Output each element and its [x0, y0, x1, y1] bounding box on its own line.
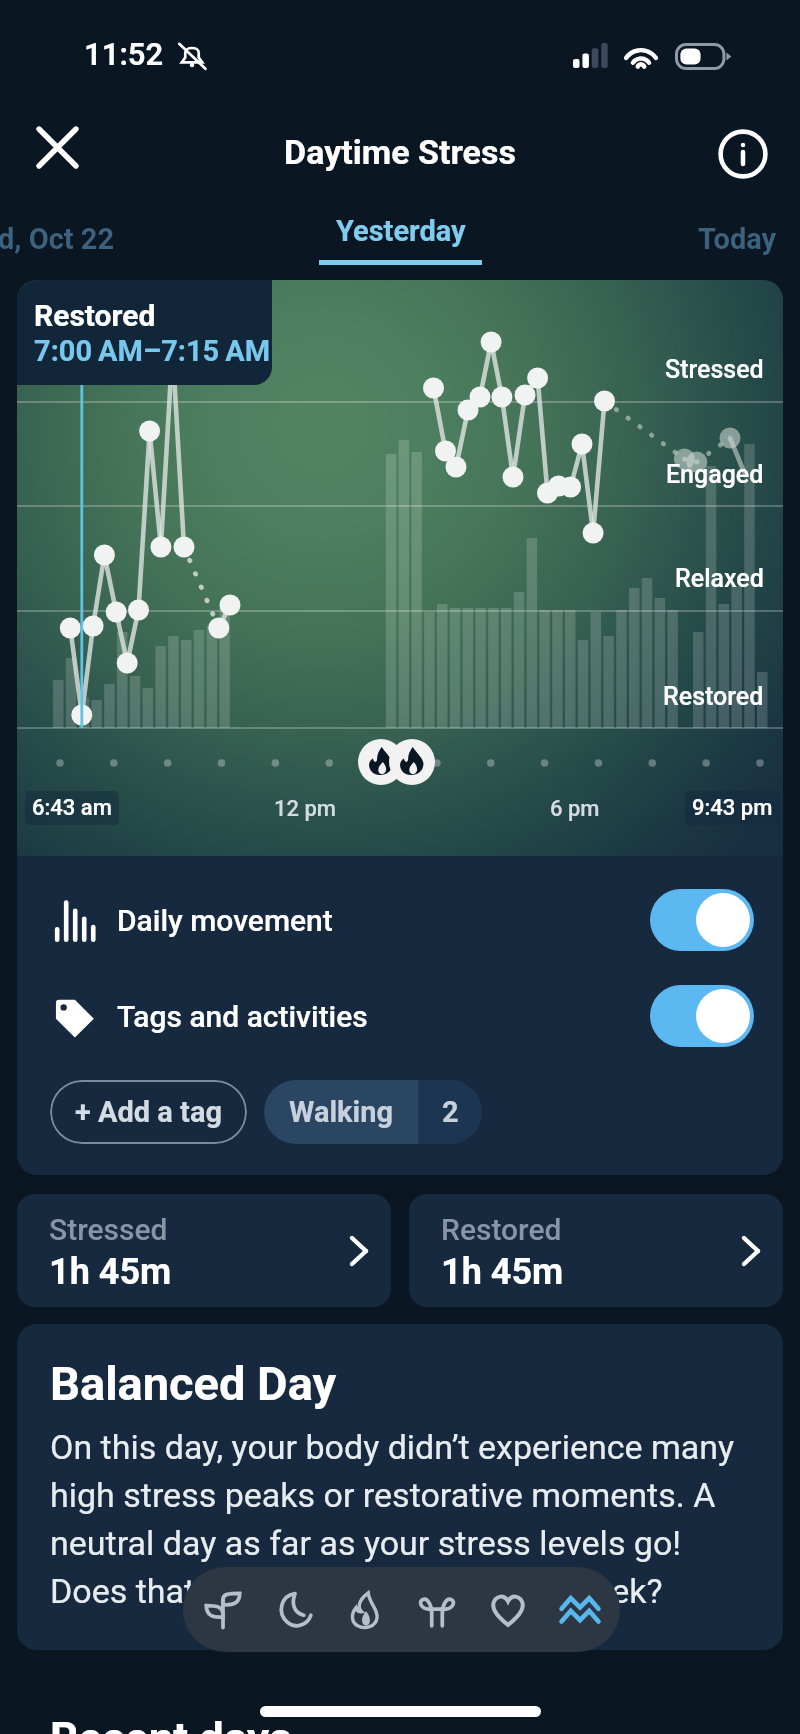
button[interactable]: Yesterday: [319, 214, 482, 265]
button[interactable]: Stressed: [17, 1194, 391, 1307]
staticText: d, Oct 22: [0, 222, 115, 256]
staticText: 9:43 pm: [692, 795, 773, 821]
staticText: Restored: [34, 298, 156, 333]
button[interactable]: Today: [690, 214, 785, 264]
staticText: 1h 45m: [441, 1251, 564, 1293]
staticText: Walking: [289, 1095, 394, 1129]
button[interactable]: Daily movement: [17, 872, 783, 968]
button[interactable]: Tags and activities: [17, 968, 783, 1064]
staticText: Stressed: [665, 355, 764, 384]
staticText: Stressed: [49, 1212, 168, 1247]
button[interactable]: + Add a tag: [50, 1080, 247, 1144]
staticText: 12 pm: [274, 796, 337, 822]
staticText: 7:00 AM–7:15 AM: [34, 334, 271, 368]
button[interactable]: Heart rate: [477, 1579, 539, 1641]
staticText: Today: [698, 222, 777, 256]
staticText: Restored: [441, 1212, 562, 1247]
staticText: Yesterday: [336, 214, 466, 248]
staticText: On this day, your body didn’t experience…: [50, 1427, 750, 1611]
staticText: Engaged: [666, 460, 764, 489]
staticText: Daily movement: [117, 903, 333, 938]
button[interactable]: Info: [710, 121, 776, 187]
button[interactable]: Cycle: [406, 1579, 468, 1641]
staticText: Daytime Stress: [0, 132, 800, 172]
staticText: 6:43 am: [32, 795, 112, 821]
staticText: 1h 45m: [49, 1251, 172, 1293]
staticText: Recent days: [50, 1713, 292, 1734]
button[interactable]: Activity: [335, 1579, 397, 1641]
button[interactable]: Restored: [409, 1194, 783, 1307]
staticText: + Add a tag: [75, 1095, 222, 1129]
button[interactable]: Stress: [549, 1579, 611, 1641]
staticText: Balanced Day: [50, 1356, 337, 1411]
button[interactable]: Close: [24, 114, 90, 180]
button[interactable]: d, Oct 22: [0, 214, 123, 264]
button[interactable]: Readiness: [192, 1579, 254, 1641]
staticText: Restored: [663, 682, 764, 711]
button[interactable]: Walking: [264, 1080, 482, 1144]
button[interactable]: Sleep: [264, 1579, 326, 1641]
staticText: 2: [442, 1095, 459, 1129]
staticText: Tags and activities: [117, 999, 368, 1034]
staticText: 11:52: [84, 36, 164, 72]
staticText: 6 pm: [550, 796, 600, 822]
staticText: Relaxed: [675, 564, 764, 593]
